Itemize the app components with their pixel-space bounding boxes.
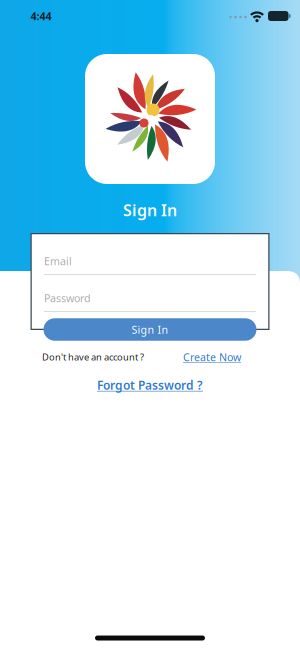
staticText: Create Now xyxy=(183,350,241,364)
staticText: Don't have an account ? xyxy=(42,351,144,363)
button[interactable]: Email xyxy=(44,254,256,275)
staticText: Forgot Password ? xyxy=(97,377,203,393)
button[interactable]: Password xyxy=(44,291,256,312)
staticText: 4:44 xyxy=(30,9,51,23)
staticText: Password xyxy=(44,291,91,305)
button[interactable]: Sign In xyxy=(43,318,256,341)
staticText: Sign In xyxy=(123,199,177,221)
button[interactable]: Forgot Password ? xyxy=(97,377,203,393)
button[interactable]: Create Now xyxy=(183,350,241,364)
staticText: Sign In xyxy=(131,322,168,337)
staticText: Email xyxy=(44,254,72,268)
